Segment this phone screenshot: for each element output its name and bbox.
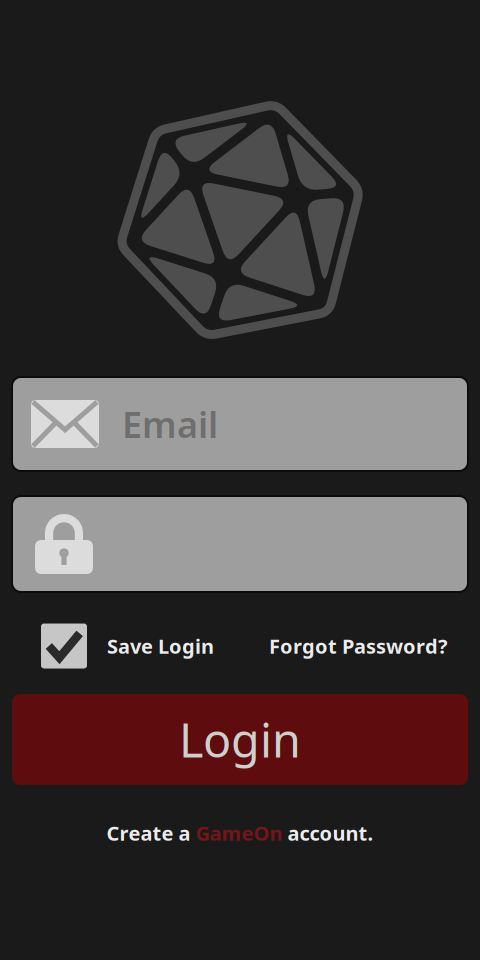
staticText: GameOn — [195, 820, 282, 846]
staticText: Save Login — [107, 633, 214, 659]
staticText: Forgot Password? — [269, 633, 448, 659]
staticText: Email — [122, 400, 218, 448]
button[interactable]: Login — [12, 694, 468, 785]
staticText: Login — [179, 708, 301, 770]
button[interactable]: Save Login — [41, 623, 214, 668]
staticText: Create a — [106, 820, 195, 846]
button[interactable]: Forgot Password? — [269, 633, 448, 659]
button[interactable]: Create a — [106, 820, 373, 846]
staticText: account. — [282, 820, 373, 846]
